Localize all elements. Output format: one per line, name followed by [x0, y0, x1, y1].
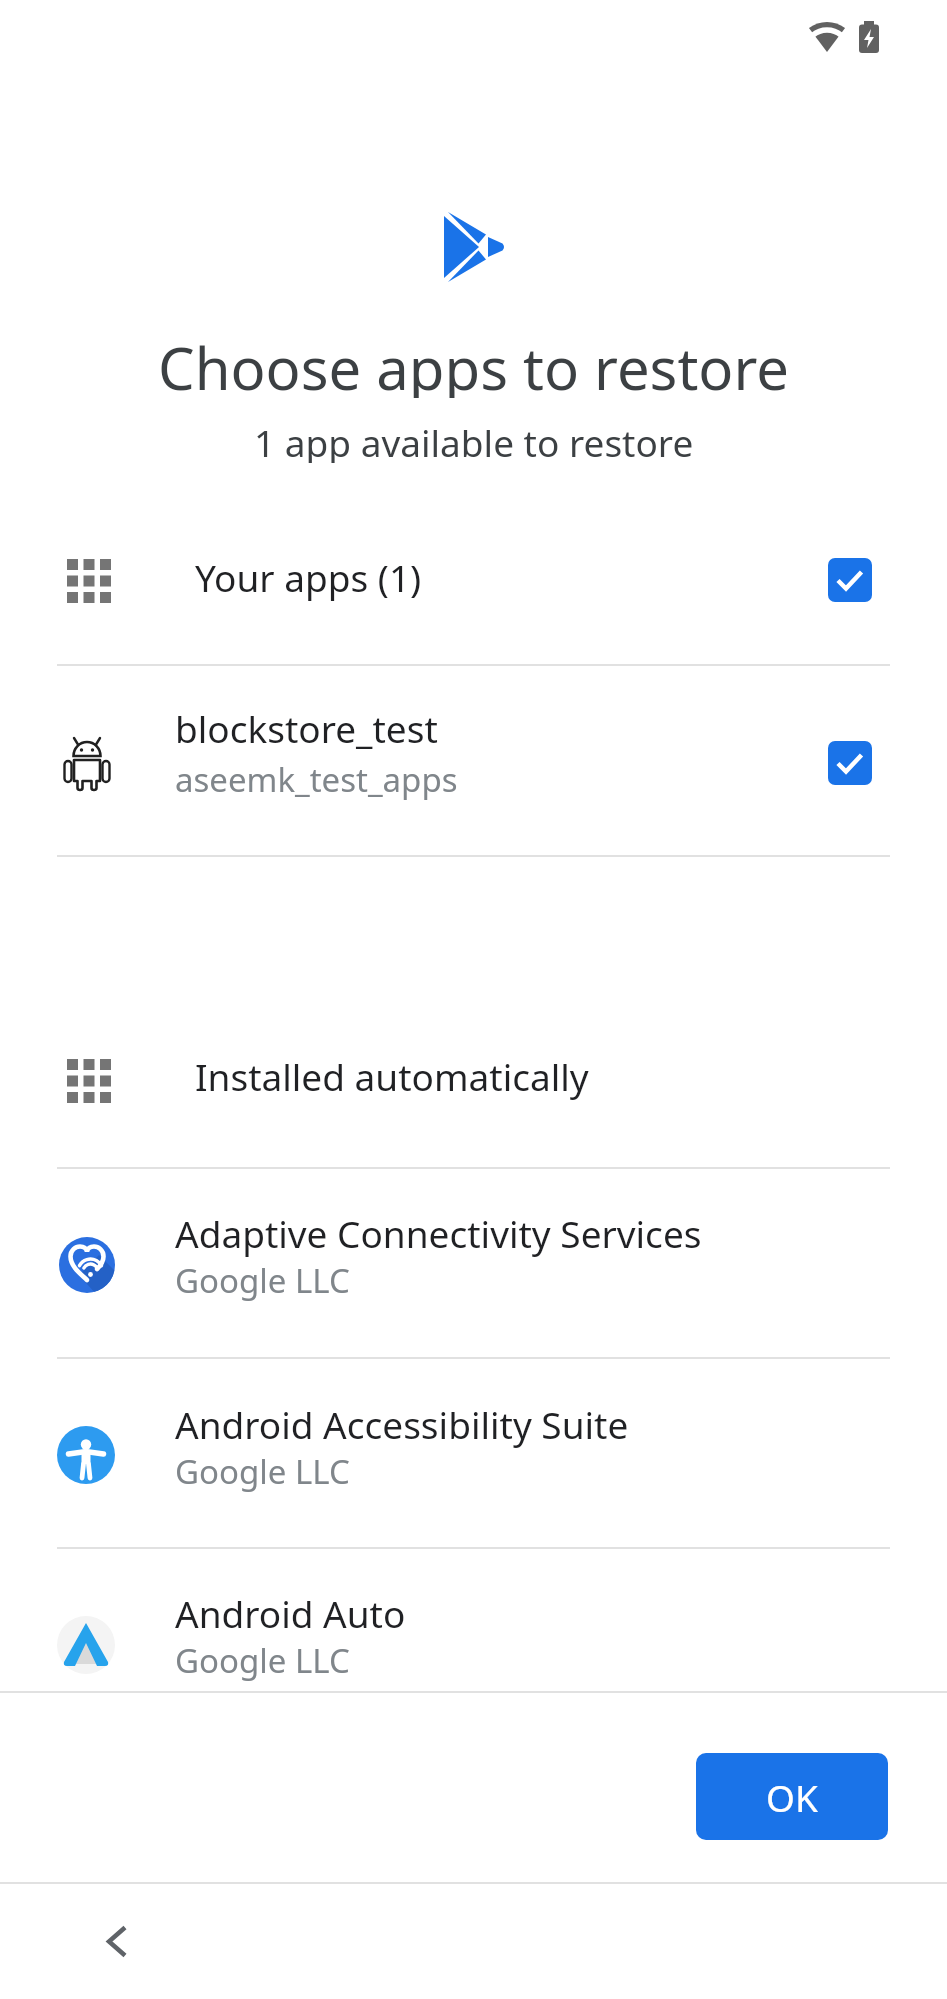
- button[interactable]: Android Accessibility Suite: [30, 1395, 917, 1515]
- staticText: Android Auto: [175, 1588, 406, 1638]
- button[interactable]: [828, 558, 872, 602]
- staticText: Google LLC: [175, 1258, 350, 1303]
- button[interactable]: blockstore_test: [30, 703, 917, 823]
- button[interactable]: OK: [696, 1753, 888, 1840]
- staticText: Adaptive Connectivity Services: [175, 1208, 702, 1258]
- staticText: Choose apps to restore: [158, 328, 789, 398]
- button[interactable]: Installed automatically: [30, 1035, 917, 1129]
- staticText: Google LLC: [175, 1638, 350, 1683]
- button[interactable]: Adaptive Connectivity Services: [30, 1205, 917, 1325]
- staticText: 1 app available to restore: [254, 417, 694, 463]
- button[interactable]: Android Auto: [30, 1585, 917, 1705]
- button[interactable]: [85, 1912, 145, 1972]
- staticText: Installed automatically: [195, 1051, 589, 1101]
- button[interactable]: [828, 741, 872, 785]
- staticText: Google LLC: [175, 1449, 350, 1494]
- button[interactable]: Your apps (1): [30, 534, 917, 628]
- staticText: blockstore_test: [175, 703, 438, 753]
- staticText: aseemk_test_apps: [175, 757, 458, 802]
- staticText: Your apps (1): [195, 552, 422, 602]
- staticText: OK: [766, 1772, 818, 1822]
- staticText: Android Accessibility Suite: [175, 1399, 629, 1449]
